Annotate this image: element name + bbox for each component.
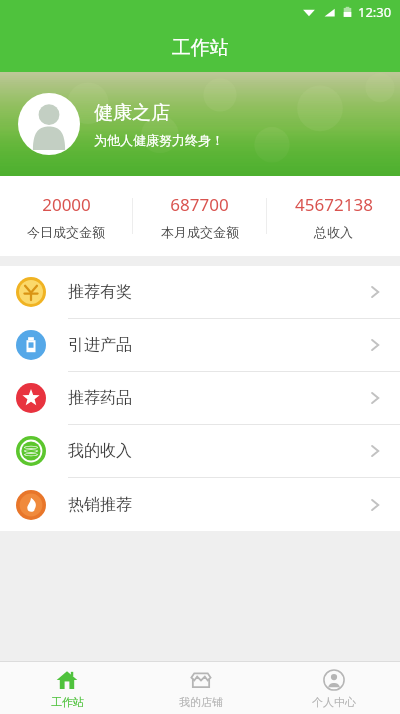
staticText: 总收入 [314, 224, 353, 240]
staticText: 个人中心 [312, 695, 356, 709]
staticText: 45672138 [295, 193, 373, 216]
staticText: 为他人健康努力终身！ [94, 132, 224, 148]
staticText: 687700 [170, 193, 229, 216]
button[interactable]: 45672138 [267, 193, 400, 240]
staticText: 我的收入 [68, 441, 132, 461]
staticText: 热销推荐 [68, 495, 132, 515]
staticText: 工作站 [51, 695, 84, 709]
staticText: 工作站 [172, 36, 229, 60]
staticText: 20000 [42, 193, 91, 216]
staticText: 12:30 [358, 3, 392, 21]
button[interactable]: 工作站 [0, 662, 134, 714]
staticText: 推荐有奖 [68, 282, 132, 302]
staticText: 今日成交金额 [27, 224, 105, 240]
button[interactable]: 热销推荐 [0, 478, 400, 531]
staticText: 本月成交金额 [161, 224, 239, 240]
button[interactable]: 引进产品 [0, 319, 400, 371]
button[interactable]: 个人中心 [267, 662, 400, 714]
staticText: 健康之店 [94, 101, 170, 125]
button[interactable]: 推荐有奖 [0, 266, 400, 318]
button[interactable]: 687700 [133, 193, 266, 240]
staticText: 推荐药品 [68, 388, 132, 408]
staticText: 我的店铺 [179, 695, 223, 709]
button[interactable]: 我的收入 [0, 425, 400, 477]
staticText: 引进产品 [68, 335, 132, 355]
button[interactable]: 推荐药品 [0, 372, 400, 424]
button[interactable]: 我的店铺 [134, 662, 267, 714]
button[interactable]: 20000 [0, 193, 132, 240]
